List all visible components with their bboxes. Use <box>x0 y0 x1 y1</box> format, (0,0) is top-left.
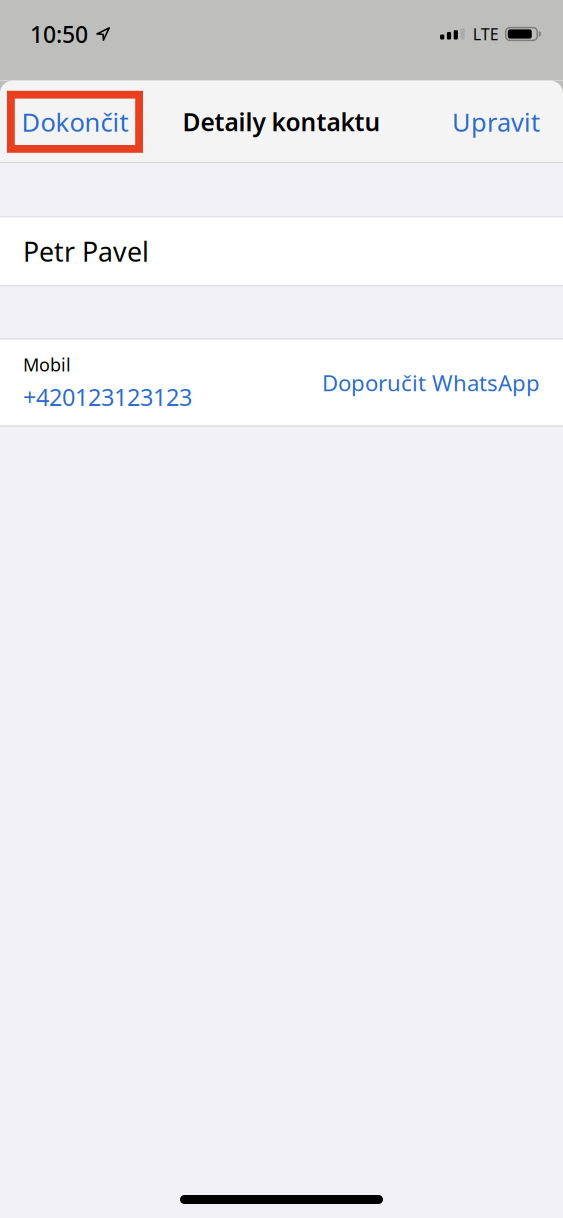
staticText: Petr Pavel <box>23 233 149 270</box>
staticText: Detaily kontaktu <box>182 105 380 138</box>
button[interactable]: Upravit <box>440 92 540 151</box>
button[interactable]: Dokončit <box>7 91 143 153</box>
staticText: Dokončit <box>21 104 128 139</box>
button[interactable]: Petr Pavel <box>0 217 563 285</box>
staticText: LTE <box>473 23 499 45</box>
staticText: Doporučit WhatsApp <box>322 367 540 398</box>
staticText: Upravit <box>452 104 540 139</box>
staticText: Mobil <box>23 352 71 377</box>
button[interactable]: Mobil <box>23 352 192 413</box>
staticText: 10:50 <box>30 18 88 50</box>
staticText: +420123123123 <box>23 381 192 413</box>
button[interactable]: Doporučit WhatsApp <box>308 353 540 412</box>
